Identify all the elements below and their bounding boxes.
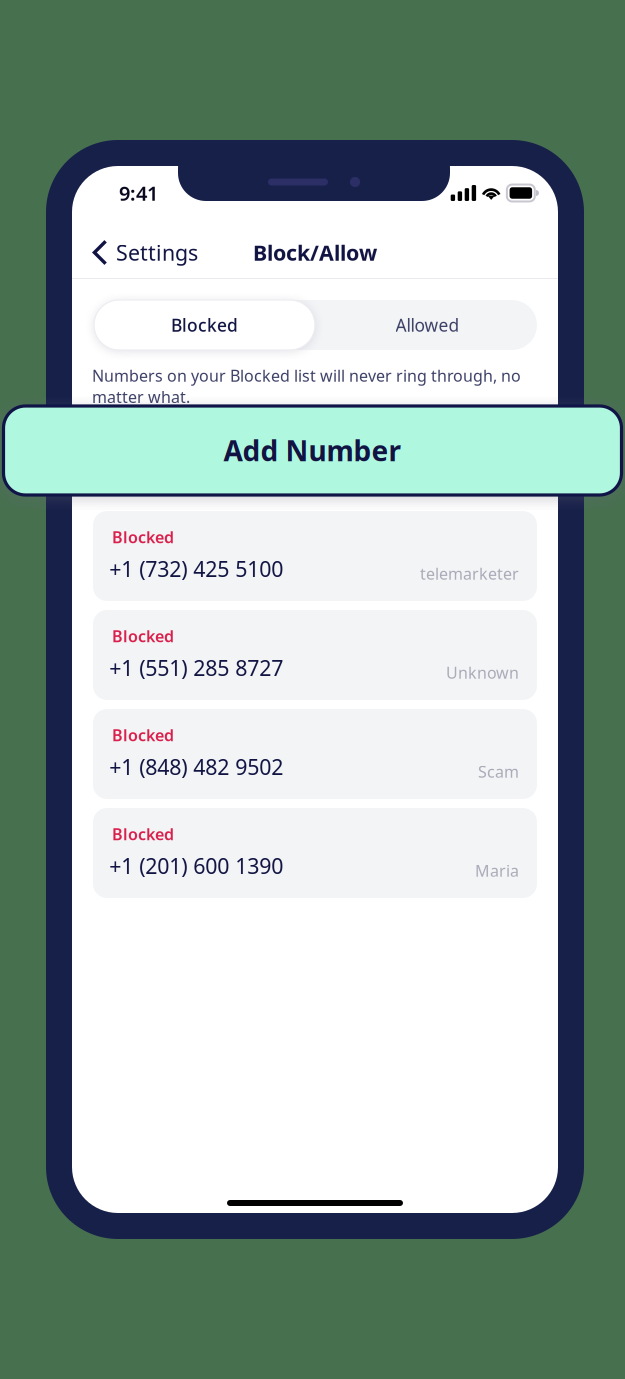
button[interactable]: Add Number [3, 406, 621, 495]
button[interactable]: Blocked [93, 808, 537, 898]
button[interactable]: Blocked [93, 610, 537, 700]
staticText: +1 (848) 482 9502 [109, 752, 283, 781]
staticText: Numbers on your Blocked list will never … [92, 365, 521, 407]
staticText: Scam [478, 761, 519, 782]
staticText: Maria [475, 860, 519, 881]
staticText: +1 (732) 425 5100 [109, 554, 283, 583]
staticText: +1 (201) 600 1390 [109, 851, 283, 880]
button[interactable]: Blocked [93, 709, 537, 799]
button[interactable]: Blocked [94, 300, 315, 350]
staticText: Blocked [112, 625, 174, 647]
staticText: Blocked [112, 526, 174, 548]
staticText: Allowed [395, 313, 459, 336]
button[interactable]: Allowed [317, 300, 537, 350]
staticText: Blocked [112, 724, 174, 746]
staticText: Settings [116, 238, 198, 267]
staticText: Block/Allow [253, 238, 377, 267]
staticText: 9:41 [119, 180, 158, 206]
staticText: telemarketer [420, 563, 519, 584]
staticText: Add Number [223, 432, 401, 469]
button[interactable]: Settings [90, 230, 200, 275]
staticText: Unknown [446, 662, 519, 683]
staticText: Blocked [171, 313, 238, 336]
staticText: Blocked [112, 823, 174, 845]
staticText: +1 (551) 285 8727 [109, 653, 283, 682]
button[interactable]: Blocked [93, 511, 537, 601]
